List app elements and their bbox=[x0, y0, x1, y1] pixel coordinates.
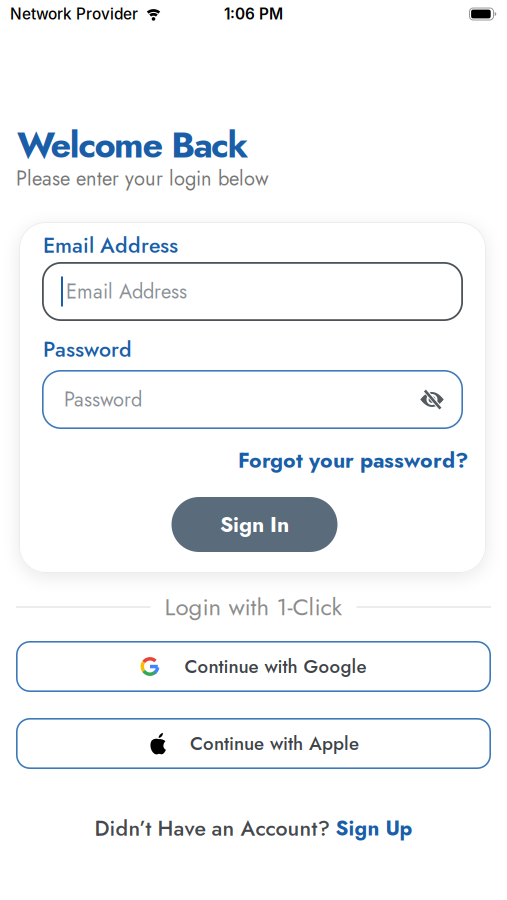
staticText: Forgot your password? bbox=[238, 445, 468, 476]
button[interactable]: Continue with Google bbox=[16, 641, 491, 692]
button[interactable]: Continue with Apple bbox=[16, 718, 491, 769]
staticText: Continue with Apple bbox=[190, 730, 359, 757]
button[interactable]: Show password bbox=[420, 387, 444, 411]
staticText: Password bbox=[43, 334, 132, 365]
staticText: Sign Up bbox=[335, 813, 412, 843]
staticText: Please enter your login below bbox=[16, 164, 269, 193]
staticText: Email Address bbox=[43, 230, 178, 261]
button[interactable]: Sign In bbox=[171, 497, 337, 552]
button[interactable]: Sign Up bbox=[335, 813, 412, 843]
staticText: Continue with Google bbox=[184, 653, 366, 680]
staticText: 1:06 PM bbox=[224, 5, 283, 23]
staticText: Login with 1-Click bbox=[164, 590, 342, 624]
staticText: Sign In bbox=[220, 509, 289, 540]
staticText: Password bbox=[64, 385, 142, 414]
button[interactable]: Forgot your password? bbox=[238, 445, 468, 476]
staticText: Welcome Back bbox=[17, 119, 248, 171]
staticText: Email Address bbox=[66, 277, 187, 306]
staticText: Network Provider bbox=[10, 5, 138, 23]
staticText: Didn’t Have an Account? bbox=[94, 813, 329, 844]
